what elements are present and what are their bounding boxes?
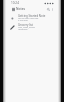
staticText: 10:24 — [11, 1, 19, 5]
staticText: Milk, eggs, bread — [18, 26, 35, 29]
staticText: 2 min ago — [18, 19, 28, 22]
button[interactable]: Getting Started Note — [3, 15, 61, 24]
button[interactable]: More options — [50, 7, 54, 11]
staticText: Notes — [16, 7, 26, 11]
button[interactable]: Search — [46, 7, 50, 11]
staticText: Tap to open and edit — [18, 17, 39, 20]
staticText: Grocery list — [18, 23, 33, 27]
button[interactable]: Grocery list — [3, 24, 61, 33]
staticText: Getting Started Note — [18, 14, 46, 18]
button[interactable]: Navigation menu — [12, 8, 15, 11]
staticText: Yesterday — [18, 28, 28, 31]
